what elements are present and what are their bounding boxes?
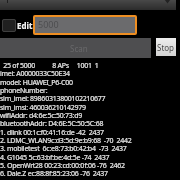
button[interactable]: Stop bbox=[156, 38, 176, 56]
staticText: 2. LDMC_WLAN9c:d3:5d:9e:b9:68 -70 2442 bbox=[0, 136, 132, 146]
staticText: 25 of 5000 8 APs 1001 1 bbox=[0, 61, 99, 71]
staticText: phoneNumber: bbox=[0, 86, 48, 96]
staticText: sim_imei: 89860313800102210677 bbox=[0, 94, 106, 104]
staticText: 4. G1045 5c:63:bf:be:4d:5e -74 2437 bbox=[0, 153, 110, 163]
staticText: 5. OpenWrt28 00:23:cd:00:0f:06 -76 2462 bbox=[0, 161, 125, 171]
button[interactable]: Edit checkbox bbox=[2, 19, 16, 32]
staticText: model: HUAWEI_P6-C00 bbox=[0, 78, 73, 88]
button[interactable]: 5000 bbox=[35, 17, 135, 33]
staticText: wifiAddr: d4:6e:5c:50:73:d9 bbox=[0, 111, 83, 121]
staticText: 3. mobiletest 6c:e8:73:b0:42:b4 -73 2437 bbox=[0, 144, 127, 154]
staticText: Stop bbox=[157, 42, 175, 53]
staticText: bluetoothAddr: D4:6E:5C:50:5C:68 bbox=[0, 119, 104, 129]
staticText: Edit bbox=[17, 20, 33, 31]
staticText: sim_imsi: 460036210142979 bbox=[0, 103, 86, 113]
staticText: 5000 bbox=[38, 18, 59, 30]
staticText: 1. dlink 00:1c:f0:41:16:de -42 2437 bbox=[0, 128, 104, 138]
staticText: 6. Dale.Z ec:88:8f:85:23:06 -76 2437 bbox=[0, 169, 108, 179]
staticText: imei: A0000033C50E34 bbox=[0, 69, 70, 79]
staticText: Scan bbox=[70, 43, 88, 54]
button[interactable]: Overflow menu bbox=[164, 0, 171, 4]
